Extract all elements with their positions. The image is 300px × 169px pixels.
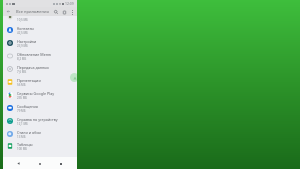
button[interactable]: Контакты [0, 23, 77, 36]
staticText: 100 МБ [17, 147, 28, 151]
staticText: Контакты [17, 26, 34, 31]
button[interactable]: Обновление Меню [0, 49, 77, 62]
staticText: 12,1 МБ [17, 122, 28, 126]
staticText: Справка по устройству [17, 117, 58, 122]
staticText: Все приложения [16, 9, 49, 15]
staticText: Передача данных [17, 65, 49, 70]
staticText: Презентации [17, 78, 41, 83]
staticText: 42,5 МБ [17, 31, 28, 35]
staticText: 23,9 МБ [17, 44, 28, 48]
staticText: 12:09 [65, 1, 74, 6]
button[interactable]: Настройки [0, 36, 77, 49]
staticText: Стили и обои [17, 130, 41, 135]
button[interactable]: Таблицы [0, 140, 77, 151]
button[interactable]: Recents [56, 159, 65, 168]
staticText: 10,5 МБ [17, 18, 28, 22]
button[interactable]: Back [4, 7, 13, 16]
staticText: 56 МБ [17, 83, 26, 87]
button[interactable]: Scroll [70, 73, 77, 82]
button[interactable]: Sort [60, 8, 68, 16]
button[interactable]: Search [52, 8, 60, 16]
staticText: 79 МБ [17, 109, 26, 113]
staticText: Обновление Меню [17, 52, 51, 57]
staticText: 7,6 МБ [17, 70, 27, 74]
staticText: 8,2 МБ [17, 57, 27, 61]
button[interactable]: Стили и обои [0, 127, 77, 140]
button[interactable]: Home [35, 159, 44, 168]
staticText: Настройки [17, 39, 37, 44]
staticText: 13 МБ [17, 135, 26, 139]
button[interactable]: Back [14, 159, 23, 168]
staticText: 235 МБ [17, 96, 28, 100]
staticText: Таблицы [17, 142, 33, 147]
button[interactable]: Справка по устройству [0, 114, 77, 127]
button[interactable]: 10,5 МБ [0, 16, 77, 23]
button[interactable]: More options [68, 8, 76, 16]
button[interactable]: Сервисы Google Play [0, 88, 77, 101]
button[interactable]: Передача данных [0, 62, 77, 75]
staticText: Сообщения [17, 104, 38, 109]
button[interactable]: Презентации [0, 75, 77, 88]
button[interactable]: Сообщения [0, 101, 77, 114]
staticText: Сервисы Google Play [17, 91, 55, 96]
